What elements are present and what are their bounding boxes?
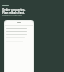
staticText: Weekly in one tap bbox=[2, 13, 22, 16]
staticText: Order groceries. Plan meals fast. bbox=[2, 8, 26, 15]
button[interactable]: Brand bbox=[2, 5, 9, 6]
button[interactable] bbox=[5, 21, 33, 72]
